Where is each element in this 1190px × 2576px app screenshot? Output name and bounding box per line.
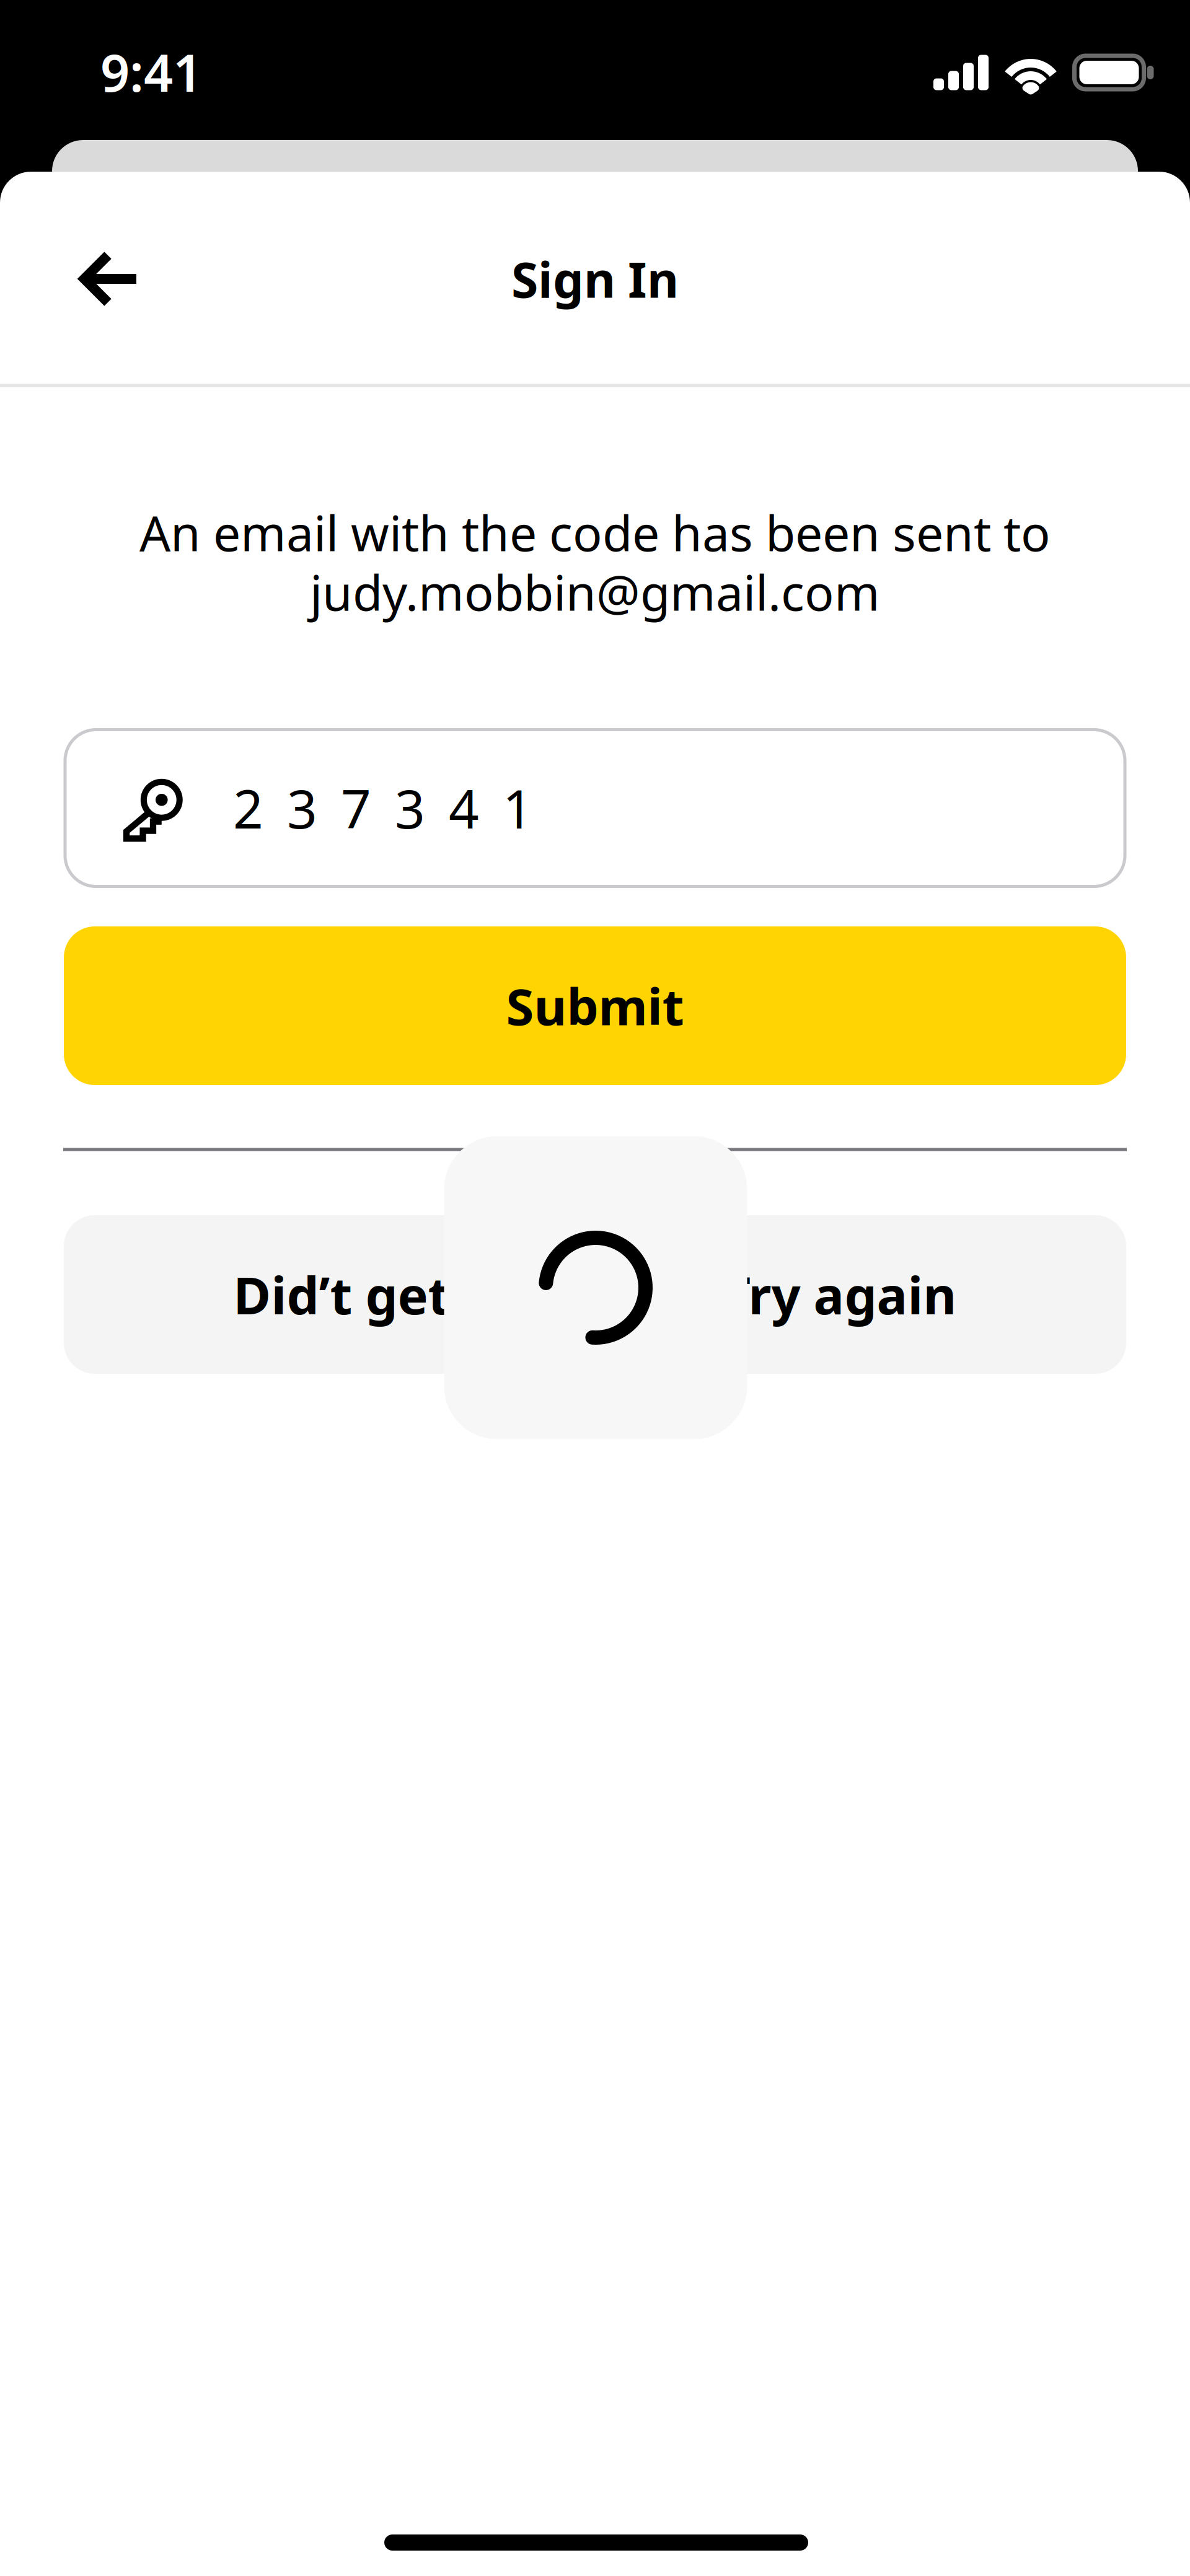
staticText: 2 — [233, 773, 263, 843]
staticText: 3 — [395, 773, 425, 843]
staticText: Sign In — [511, 247, 679, 311]
staticText: Submit — [506, 972, 684, 1039]
button[interactable]: 2 — [65, 730, 1125, 886]
staticText: 4 — [449, 773, 479, 843]
button[interactable]: Did’t get the code? Try again — [64, 1215, 1126, 1374]
staticText: 7 — [341, 773, 371, 843]
button[interactable]: Back — [55, 223, 166, 335]
staticText: 3 — [287, 773, 317, 843]
staticText: 9:41 — [100, 38, 202, 106]
staticText: Did’t get the code? Try again — [233, 1260, 957, 1329]
staticText: judy.mobbin@gmail.com — [310, 559, 880, 624]
button[interactable]: Submit — [64, 926, 1126, 1085]
staticText: 1 — [503, 773, 533, 843]
staticText: An email with the code has been sent to — [139, 500, 1051, 565]
